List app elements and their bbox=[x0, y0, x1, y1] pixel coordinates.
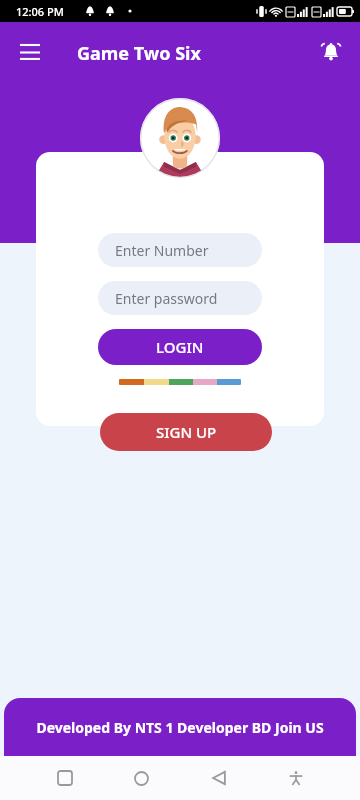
button[interactable]: SIGN UP bbox=[100, 413, 272, 451]
button[interactable]: Home bbox=[103, 756, 180, 800]
button[interactable]: Enter password bbox=[98, 281, 262, 315]
button[interactable]: LOGIN bbox=[98, 329, 262, 365]
staticText: 12:06 PM bbox=[16, 4, 64, 19]
staticText: Enter password bbox=[115, 289, 218, 308]
button[interactable]: Developed By NTS 1 Developer BD Join US bbox=[4, 698, 356, 756]
button[interactable]: Accessibility bbox=[257, 756, 334, 800]
button[interactable]: Open navigation menu bbox=[12, 34, 48, 70]
button[interactable]: Back bbox=[180, 756, 257, 800]
staticText: Enter Number bbox=[115, 241, 209, 260]
button[interactable]: Recent apps bbox=[26, 756, 103, 800]
staticText: Developed By NTS 1 Developer BD Join US bbox=[36, 718, 324, 737]
staticText: SIGN UP bbox=[156, 422, 217, 442]
staticText: LOGIN bbox=[156, 337, 204, 357]
button[interactable]: Enter Number bbox=[98, 233, 262, 267]
staticText: Game Two Six bbox=[77, 41, 201, 66]
button[interactable]: Notifications bbox=[312, 33, 350, 71]
